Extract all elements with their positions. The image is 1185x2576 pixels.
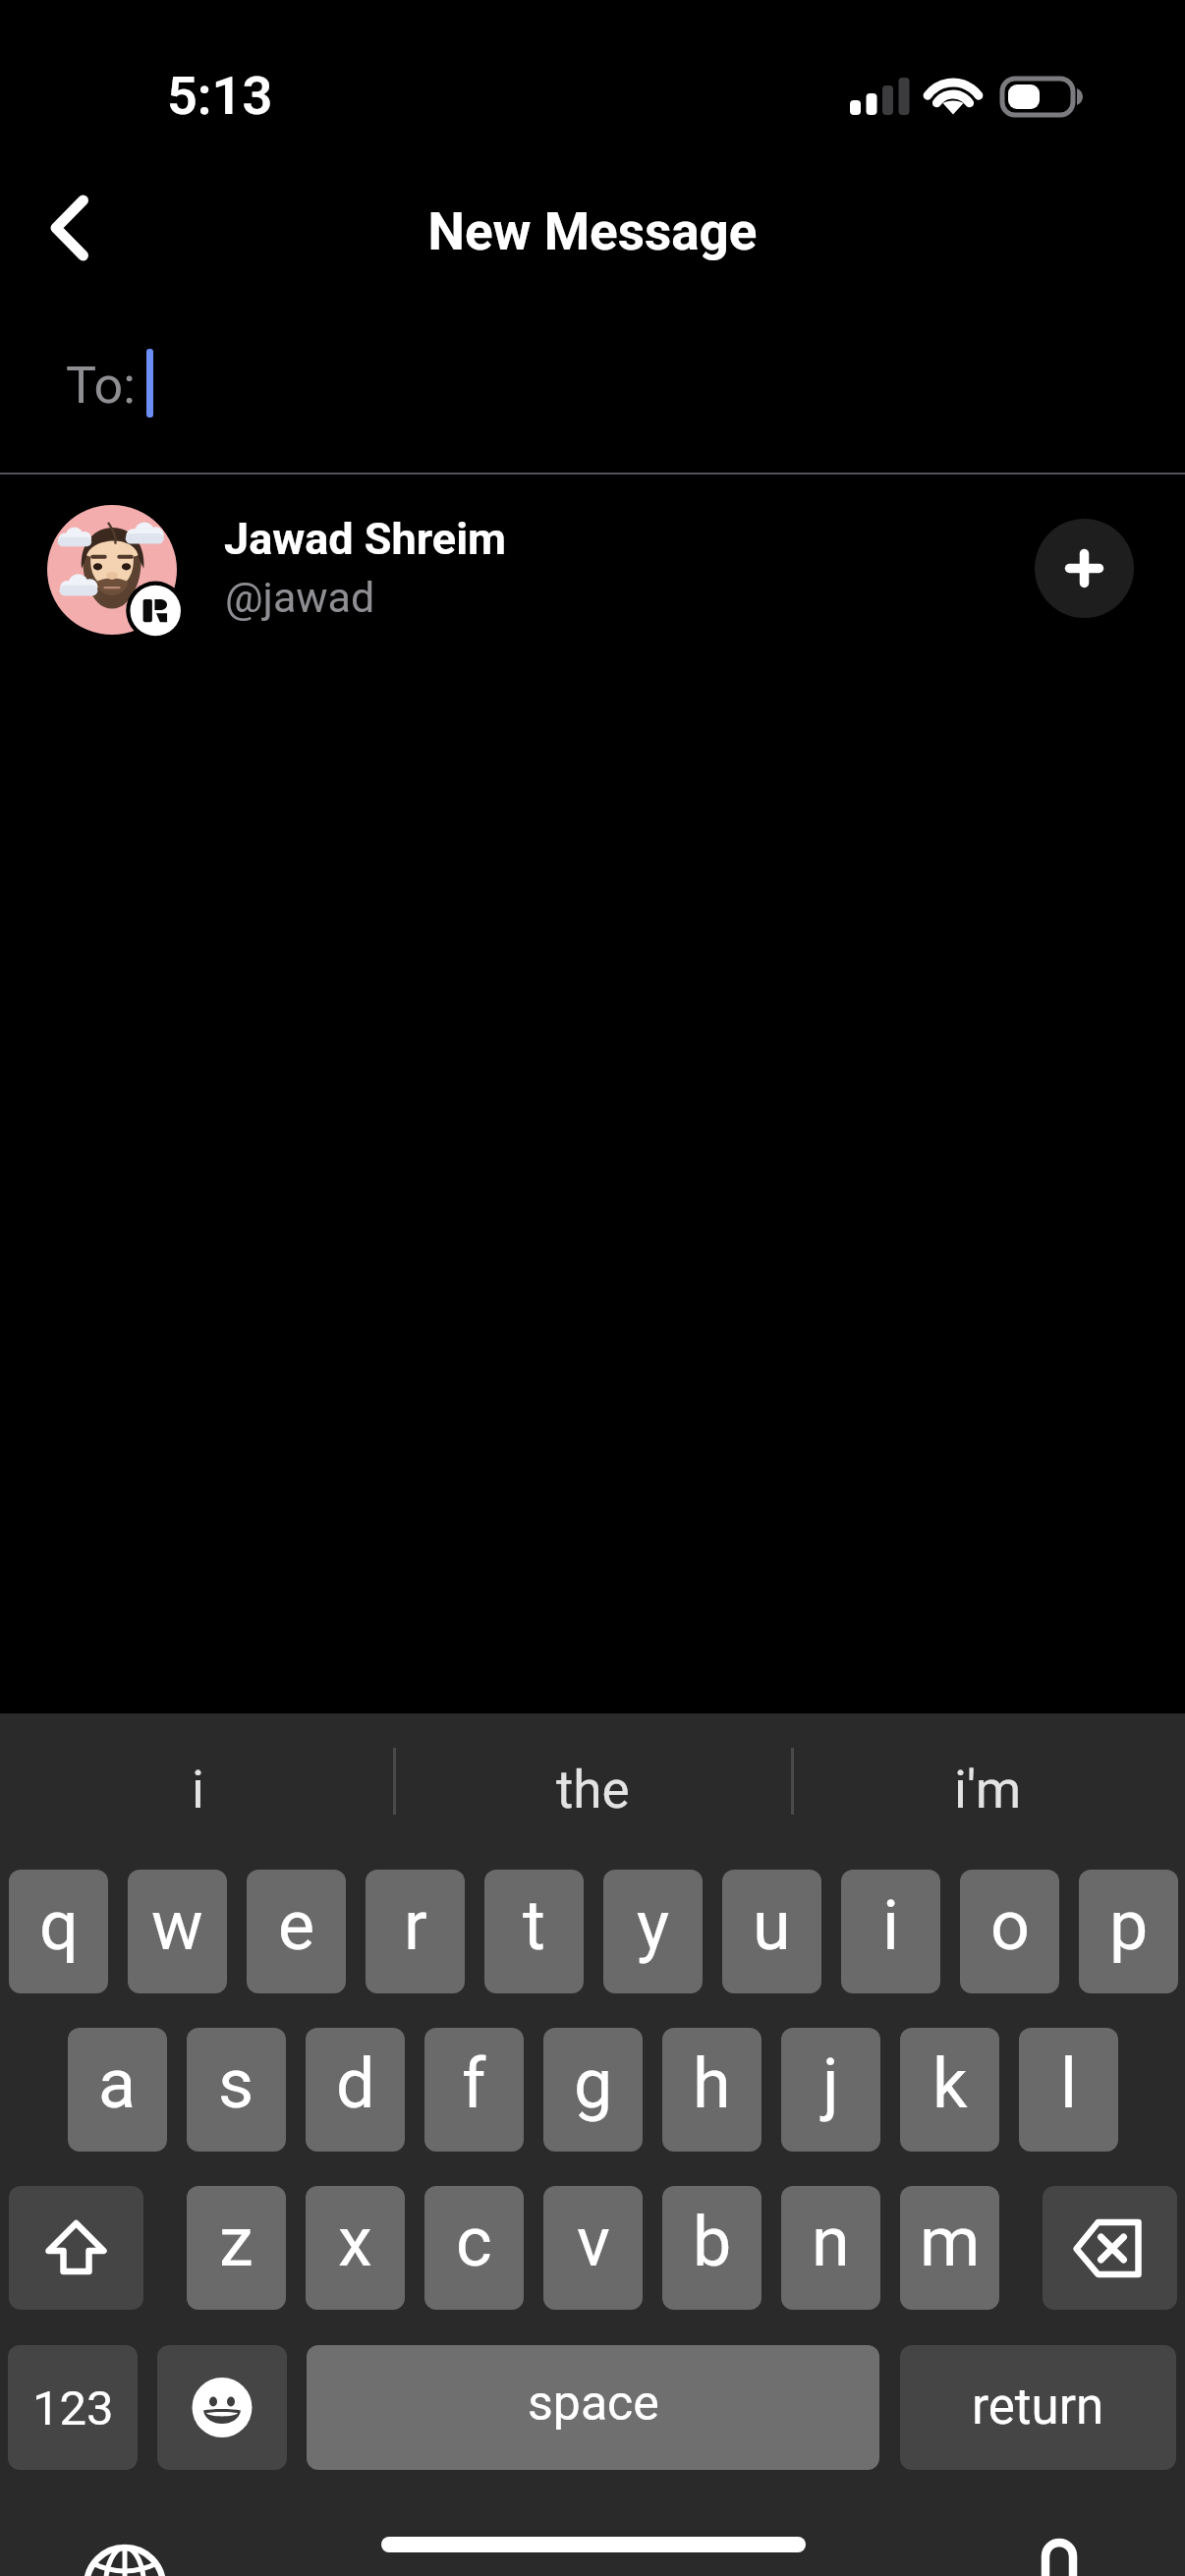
button[interactable]: Emoji	[157, 2345, 287, 2470]
staticText: New Message	[0, 201, 1185, 262]
button[interactable]: j	[781, 2028, 880, 2152]
staticText: i'm	[954, 1760, 1022, 1820]
staticText: t	[523, 1885, 545, 1966]
button[interactable]: s	[187, 2028, 286, 2152]
button[interactable]: i'm	[811, 1713, 1164, 1867]
button[interactable]: t	[484, 1870, 584, 1993]
button[interactable]: u	[722, 1870, 821, 1993]
staticText: o	[990, 1885, 1030, 1966]
staticText: l	[1060, 2044, 1078, 2124]
button[interactable]: o	[960, 1870, 1059, 1993]
staticText: the	[556, 1760, 630, 1820]
button[interactable]: p	[1079, 1870, 1178, 1993]
staticText: d	[336, 2044, 375, 2124]
button[interactable]: m	[900, 2186, 999, 2310]
button[interactable]: space	[307, 2345, 879, 2470]
button[interactable]: Backspace	[1043, 2186, 1177, 2310]
staticText: i	[882, 1885, 900, 1966]
button[interactable]: the	[416, 1713, 769, 1867]
button[interactable]: w	[128, 1870, 227, 1993]
staticText: j	[822, 2044, 839, 2124]
button[interactable]: g	[543, 2028, 643, 2152]
staticText: x	[338, 2202, 372, 2282]
staticText: s	[218, 2044, 254, 2124]
button[interactable]: d	[306, 2028, 405, 2152]
staticText: 5:13	[167, 65, 273, 127]
staticText: return	[972, 2378, 1104, 2436]
staticText: v	[577, 2202, 610, 2282]
button[interactable]: Add	[1035, 519, 1134, 618]
button[interactable]: return	[900, 2345, 1176, 2470]
button[interactable]: y	[603, 1870, 703, 1993]
button[interactable]: Shift	[9, 2186, 143, 2310]
staticText: g	[574, 2044, 613, 2124]
button[interactable]: n	[781, 2186, 880, 2310]
staticText: Jawad Shreim	[224, 513, 507, 565]
staticText: n	[812, 2202, 850, 2282]
staticText: a	[98, 2044, 137, 2124]
staticText: m	[920, 2202, 981, 2282]
button[interactable]: f	[424, 2028, 524, 2152]
button[interactable]: r	[366, 1870, 465, 1993]
button[interactable]: Change keyboard	[67, 2499, 183, 2576]
button[interactable]: a	[68, 2028, 167, 2152]
staticText: u	[753, 1885, 791, 1966]
button[interactable]: k	[900, 2028, 999, 2152]
staticText: q	[39, 1885, 79, 1966]
staticText: y	[637, 1885, 670, 1966]
staticText: @jawad	[225, 573, 375, 622]
staticText: w	[151, 1885, 203, 1966]
button[interactable]: 123	[8, 2345, 138, 2470]
button[interactable]: To:	[0, 300, 1185, 473]
staticText: f	[462, 2044, 486, 2124]
button[interactable]: Jawad Shreim	[0, 475, 1185, 651]
button[interactable]: i	[841, 1870, 940, 1993]
staticText: k	[932, 2044, 968, 2124]
staticText: i	[192, 1760, 204, 1820]
button[interactable]: v	[543, 2186, 643, 2310]
button[interactable]: c	[424, 2186, 524, 2310]
button[interactable]: z	[187, 2186, 286, 2310]
staticText: 123	[32, 2380, 114, 2436]
button[interactable]: Dictation	[1002, 2499, 1118, 2576]
staticText: e	[278, 1885, 315, 1966]
staticText: r	[404, 1885, 427, 1966]
button[interactable]: i	[21, 1713, 374, 1867]
button[interactable]: Back	[10, 172, 128, 290]
staticText: b	[693, 2202, 732, 2282]
button[interactable]: q	[9, 1870, 108, 1993]
staticText: p	[1109, 1885, 1149, 1966]
staticText: h	[693, 2044, 731, 2124]
button[interactable]: h	[662, 2028, 762, 2152]
button[interactable]: l	[1019, 2028, 1118, 2152]
staticText: z	[219, 2202, 254, 2282]
staticText: To:	[66, 356, 136, 416]
button[interactable]: b	[662, 2186, 762, 2310]
button[interactable]: e	[247, 1870, 346, 1993]
staticText: c	[456, 2202, 492, 2282]
button[interactable]: x	[306, 2186, 405, 2310]
staticText: space	[528, 2375, 659, 2433]
